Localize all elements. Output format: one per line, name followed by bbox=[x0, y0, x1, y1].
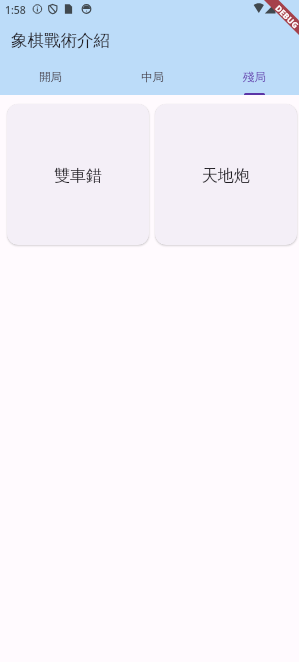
staticText: DEBUG bbox=[273, 2, 299, 31]
other: Debug banner bbox=[251, 0, 299, 48]
staticText: 中局 bbox=[141, 70, 164, 84]
staticText: 開局 bbox=[39, 70, 62, 84]
button[interactable]: 中局 bbox=[101, 62, 203, 95]
staticText: 天地炮 bbox=[202, 166, 250, 186]
staticText: 1:58 bbox=[5, 3, 26, 17]
staticText: 雙車錯 bbox=[54, 166, 102, 186]
button[interactable]: 雙車錯 bbox=[7, 104, 149, 245]
staticText: 殘局 bbox=[243, 70, 266, 84]
button[interactable]: 天地炮 bbox=[155, 104, 297, 245]
staticText: 象棋戰術介紹 bbox=[11, 30, 110, 51]
button[interactable]: 殘局 bbox=[203, 62, 299, 95]
button[interactable]: 開局 bbox=[0, 62, 101, 95]
